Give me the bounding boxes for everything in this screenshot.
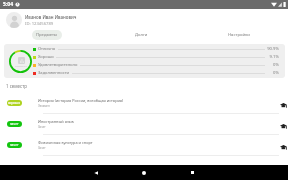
staticText: Зачет	[38, 125, 46, 129]
button[interactable]: Grades	[277, 120, 285, 128]
staticText: Долги	[135, 32, 148, 38]
button[interactable]: Back	[82, 165, 110, 180]
button[interactable]: зачет	[0, 135, 288, 156]
staticText: 9.1%	[267, 54, 279, 60]
staticText: 0%	[267, 70, 279, 76]
staticText: зачет	[10, 122, 19, 126]
staticText: История (история России, всеобщая истори…	[38, 98, 124, 103]
button[interactable]: Home	[130, 165, 158, 180]
staticText: Иванов Иван Иванович	[25, 14, 77, 20]
button[interactable]: Grades	[277, 141, 285, 149]
staticText: Зачет	[38, 146, 46, 150]
button[interactable]: Recents	[178, 165, 206, 180]
button[interactable]: Долги	[131, 30, 152, 40]
staticText: 90.9%	[267, 46, 279, 52]
button[interactable]: Предметы	[32, 30, 62, 40]
staticText: Иностранный язык	[38, 119, 74, 124]
staticText: Отлично	[38, 46, 56, 52]
button[interactable]: хорошо	[0, 93, 288, 114]
button[interactable]: зачет	[0, 114, 288, 135]
staticText: ID: 123456789	[25, 21, 54, 27]
staticText: Предметы	[36, 32, 58, 38]
staticText: Экзамен	[38, 104, 50, 108]
staticText: 5:04	[3, 1, 13, 8]
staticText: хорошо	[8, 101, 21, 105]
staticText: Хорошо	[38, 54, 54, 60]
staticText: Настройки	[228, 32, 250, 38]
button[interactable]: Настройки	[224, 30, 254, 40]
staticText: Задолженности	[38, 70, 70, 76]
staticText: Физическая культура и спорт	[38, 140, 93, 145]
staticText: зачет	[10, 143, 19, 147]
button[interactable]: Grades	[277, 99, 285, 107]
staticText: 1 семестр	[6, 83, 27, 89]
staticText: 0%	[267, 62, 279, 68]
staticText: Удовлетворительно	[38, 62, 78, 68]
staticText: успеваемость	[15, 65, 27, 67]
